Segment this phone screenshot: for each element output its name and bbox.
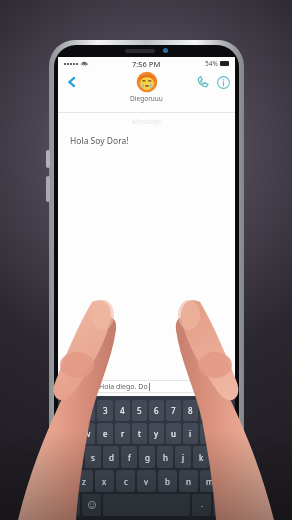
staticText: t bbox=[138, 428, 141, 439]
button[interactable]: s bbox=[85, 446, 101, 468]
staticText: c bbox=[124, 476, 128, 487]
staticText: 4 bbox=[120, 405, 125, 416]
button[interactable]: p bbox=[217, 423, 232, 444]
button[interactable]: 4 bbox=[115, 400, 130, 421]
button[interactable]: i bbox=[183, 423, 198, 444]
staticText: Diegoruuu bbox=[130, 94, 163, 103]
button[interactable]: 7 bbox=[166, 400, 181, 421]
staticText: g bbox=[145, 452, 150, 463]
button[interactable] bbox=[213, 494, 232, 516]
button[interactable]: g bbox=[139, 446, 155, 468]
button[interactable]: Emoji bbox=[82, 494, 101, 516]
staticText: u bbox=[171, 428, 176, 439]
staticText: 54% bbox=[205, 59, 218, 68]
staticText: b bbox=[165, 476, 170, 487]
button[interactable]: 9 bbox=[200, 400, 215, 421]
button[interactable]: k bbox=[193, 446, 209, 468]
button[interactable]: Camera bbox=[61, 379, 77, 395]
button[interactable]: Diegoruuu bbox=[130, 71, 163, 103]
button[interactable]: b bbox=[158, 470, 177, 492]
staticText: v bbox=[144, 476, 149, 487]
staticText: h bbox=[163, 452, 168, 463]
staticText: j bbox=[182, 452, 185, 463]
button[interactable]: q bbox=[61, 423, 77, 444]
button[interactable]: o bbox=[200, 423, 215, 444]
staticText: 7 bbox=[171, 405, 176, 416]
button[interactable]: c bbox=[116, 470, 135, 492]
button[interactable]: Apps bbox=[77, 380, 91, 394]
staticText: i bbox=[189, 428, 192, 439]
button[interactable]: d bbox=[103, 446, 119, 468]
staticText: y bbox=[154, 428, 159, 439]
button[interactable]: r bbox=[115, 423, 130, 444]
button[interactable]: Back bbox=[62, 72, 82, 92]
button[interactable]: 3 bbox=[97, 400, 113, 421]
staticText: o bbox=[205, 428, 210, 439]
button[interactable]: 6 bbox=[149, 400, 164, 421]
staticText: e bbox=[103, 428, 108, 439]
button[interactable]: . bbox=[192, 494, 211, 516]
staticText: Hola Soy Dora! bbox=[70, 135, 129, 147]
button[interactable]: y bbox=[149, 423, 164, 444]
staticText: w bbox=[84, 428, 91, 439]
staticText: r bbox=[121, 428, 125, 439]
button[interactable]: 8 bbox=[183, 400, 198, 421]
staticText: f bbox=[128, 452, 131, 463]
staticText: k bbox=[199, 452, 204, 463]
button[interactable]: h bbox=[157, 446, 173, 468]
staticText: 7:56 PM bbox=[132, 59, 161, 69]
button[interactable]: 5 bbox=[132, 400, 147, 421]
button[interactable]: a bbox=[66, 446, 83, 468]
button[interactable]: m bbox=[200, 470, 219, 492]
button[interactable]: z bbox=[74, 470, 93, 492]
staticText: m bbox=[206, 476, 214, 487]
button[interactable]: Info bbox=[214, 73, 232, 91]
button[interactable]: Call bbox=[194, 73, 212, 91]
staticText: 6 bbox=[154, 405, 159, 416]
button[interactable]: x bbox=[95, 470, 114, 492]
button[interactable]: , bbox=[61, 494, 80, 516]
staticText: 3 bbox=[103, 405, 108, 416]
button[interactable]: u bbox=[166, 423, 181, 444]
staticText: x bbox=[102, 476, 107, 487]
button[interactable]: v bbox=[137, 470, 156, 492]
button[interactable]: 2 bbox=[79, 400, 95, 421]
button[interactable]: e bbox=[97, 423, 113, 444]
staticText: n bbox=[186, 476, 191, 487]
button[interactable]: 0 bbox=[217, 400, 232, 421]
button[interactable]: j bbox=[175, 446, 191, 468]
button[interactable]: w bbox=[79, 423, 95, 444]
staticText: 5 bbox=[137, 405, 142, 416]
button[interactable]: n bbox=[179, 470, 198, 492]
button[interactable]: l bbox=[211, 446, 227, 468]
staticText: Message bbox=[132, 117, 162, 127]
staticText: 8 bbox=[188, 405, 193, 416]
staticText: d bbox=[109, 452, 114, 463]
button[interactable]: Hola diego. Do bbox=[94, 380, 215, 393]
staticText: z bbox=[82, 476, 86, 487]
staticText: s bbox=[91, 452, 95, 463]
button[interactable]: t bbox=[132, 423, 147, 444]
button[interactable]: f bbox=[121, 446, 137, 468]
staticText: Hola diego. Do bbox=[99, 382, 148, 392]
staticText: . bbox=[201, 500, 203, 510]
